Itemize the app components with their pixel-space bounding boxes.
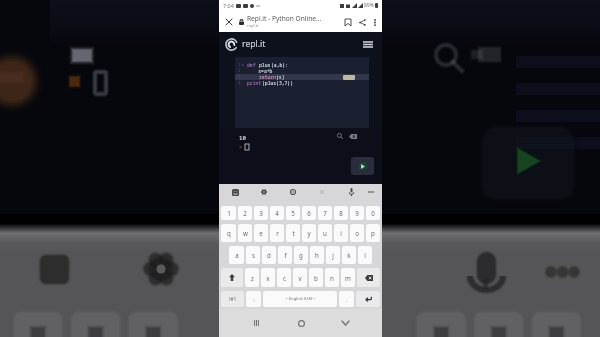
button[interactable]: 4 (270, 206, 284, 220)
button[interactable]: 9 (350, 206, 364, 220)
staticText: s=a+b (247, 68, 273, 74)
staticText: 1 (238, 62, 241, 68)
button[interactable]: 1 (221, 206, 236, 220)
staticText: : (253, 296, 255, 303)
button[interactable]: 8 (334, 206, 348, 220)
staticText: 10 (239, 134, 246, 142)
staticText: b (314, 274, 318, 282)
staticText: u (323, 229, 327, 237)
button[interactable]: Share (355, 13, 369, 31)
button[interactable]: z (245, 268, 259, 287)
staticText: 0 (371, 209, 375, 217)
staticText: 8 (339, 209, 343, 217)
staticText: s (252, 251, 255, 259)
staticText: 7:04 (223, 2, 234, 9)
button[interactable]: Enter (356, 291, 380, 307)
button[interactable]: y (302, 224, 316, 242)
staticText: 2 (243, 209, 247, 217)
button[interactable]: Backspace (357, 268, 380, 287)
staticText: (a,b): (271, 62, 288, 68)
staticText: p (371, 229, 375, 237)
button[interactable]: Symbols (221, 291, 244, 307)
staticText: x (266, 274, 270, 282)
button[interactable]: 5 (286, 206, 300, 220)
button[interactable]: j (326, 246, 340, 264)
staticText: return (259, 74, 276, 80)
staticText: o (355, 229, 359, 237)
staticText: 4 (275, 209, 279, 217)
button[interactable]: : (246, 291, 261, 307)
button[interactable]: e (254, 224, 268, 242)
staticText: n (330, 274, 334, 282)
button[interactable]: Voice input (343, 184, 359, 200)
button[interactable]: o (350, 224, 364, 242)
button[interactable]: Emoji (285, 184, 301, 200)
button[interactable]: 6 (302, 206, 316, 220)
button[interactable]: Stickers (227, 184, 243, 200)
button[interactable]: . (339, 291, 354, 307)
staticText: 7 (323, 209, 327, 217)
staticText: m (345, 274, 351, 282)
staticText: repl.it (247, 23, 259, 29)
button[interactable]: c (277, 268, 291, 287)
button[interactable]: t (286, 224, 300, 242)
staticText: l (364, 251, 366, 259)
button[interactable]: i (334, 224, 348, 242)
button[interactable]: More (363, 184, 379, 200)
staticText: Repl.it - Python Online… (247, 14, 322, 23)
button[interactable]: g (294, 246, 308, 264)
button[interactable]: Hide keyboard (337, 315, 353, 331)
button[interactable]: r (270, 224, 284, 242)
button[interactable]: 3 (254, 206, 268, 220)
button[interactable]: k (342, 246, 356, 264)
button[interactable]: n (325, 268, 339, 287)
staticText: c (283, 274, 286, 282)
button[interactable]: 0 (366, 206, 380, 220)
button[interactable]: b (309, 268, 323, 287)
button[interactable]: 7 (318, 206, 332, 220)
button[interactable]: a (229, 246, 244, 264)
button[interactable]: q (221, 224, 236, 242)
staticText: i (340, 229, 342, 237)
staticText: g (299, 251, 303, 259)
button[interactable]: 2 (238, 206, 252, 220)
staticText: > (239, 143, 243, 151)
button[interactable]: More options (369, 13, 380, 31)
staticText: t (292, 229, 295, 237)
button[interactable]: p (366, 224, 380, 242)
staticText: def (247, 62, 259, 68)
button[interactable]: Clipboard (314, 184, 330, 200)
button[interactable]: m (341, 268, 355, 287)
button[interactable]: Shift (221, 268, 243, 287)
button[interactable]: Bookmark (341, 13, 355, 31)
button[interactable]: f (278, 246, 292, 264)
staticText: e (259, 229, 263, 237)
staticText: • English (UK) • (286, 296, 315, 302)
button[interactable]: • English (UK) • (263, 291, 337, 307)
staticText: z (251, 274, 254, 282)
staticText: (plus(3,7)) (262, 80, 293, 86)
button[interactable]: Settings (256, 184, 272, 200)
button[interactable]: Run (351, 157, 374, 175)
button[interactable]: v (293, 268, 307, 287)
staticText: j (332, 251, 334, 259)
staticText: v (298, 274, 302, 282)
button[interactable]: d (262, 246, 276, 264)
staticText: k (347, 251, 351, 259)
button[interactable]: l (358, 246, 372, 264)
button[interactable]: Home (293, 315, 309, 331)
button[interactable]: u (318, 224, 332, 242)
staticText: r (276, 229, 279, 237)
button[interactable]: x (261, 268, 275, 287)
button[interactable]: Close (222, 13, 236, 31)
button[interactable]: Clear console (348, 131, 358, 141)
button[interactable]: h (310, 246, 324, 264)
button[interactable]: s (246, 246, 260, 264)
button[interactable]: Menu (361, 37, 375, 51)
button[interactable]: w (238, 224, 252, 242)
staticText: h (315, 251, 319, 259)
staticText: plus (259, 62, 271, 68)
button[interactable]: Search console (335, 131, 345, 141)
button[interactable]: Recents (248, 315, 264, 331)
